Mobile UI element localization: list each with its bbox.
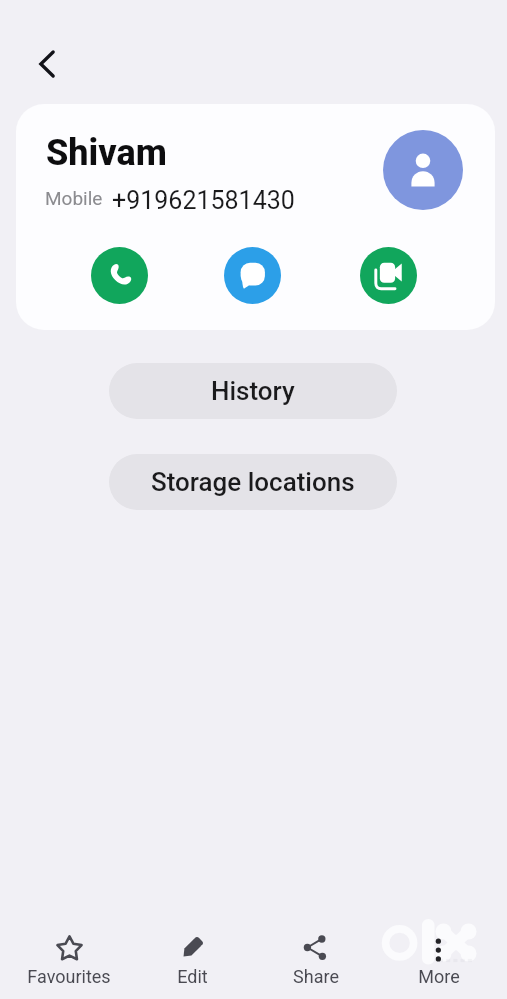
button[interactable]: Favourites: [7, 909, 131, 999]
staticText: Storage locations: [151, 467, 355, 497]
staticText: Shivam: [46, 132, 167, 174]
button[interactable]: Back: [19, 36, 74, 91]
staticText: Share: [293, 966, 339, 987]
staticText: More: [418, 966, 460, 987]
button[interactable]: Share: [254, 909, 377, 999]
button[interactable]: Video call: [360, 247, 417, 304]
button[interactable]: History: [109, 363, 397, 419]
staticText: +919621581430: [112, 186, 295, 215]
staticText: History: [211, 376, 295, 406]
button[interactable]: Edit: [131, 909, 254, 999]
button[interactable]: More: [377, 909, 500, 999]
staticText: Favourites: [27, 966, 111, 987]
button[interactable]: Storage locations: [109, 454, 397, 510]
staticText: Mobile: [45, 187, 103, 209]
staticText: Edit: [177, 966, 208, 987]
button[interactable]: Call: [91, 247, 148, 304]
button[interactable]: Contact photo: [383, 130, 463, 210]
button[interactable]: Message: [224, 247, 281, 304]
